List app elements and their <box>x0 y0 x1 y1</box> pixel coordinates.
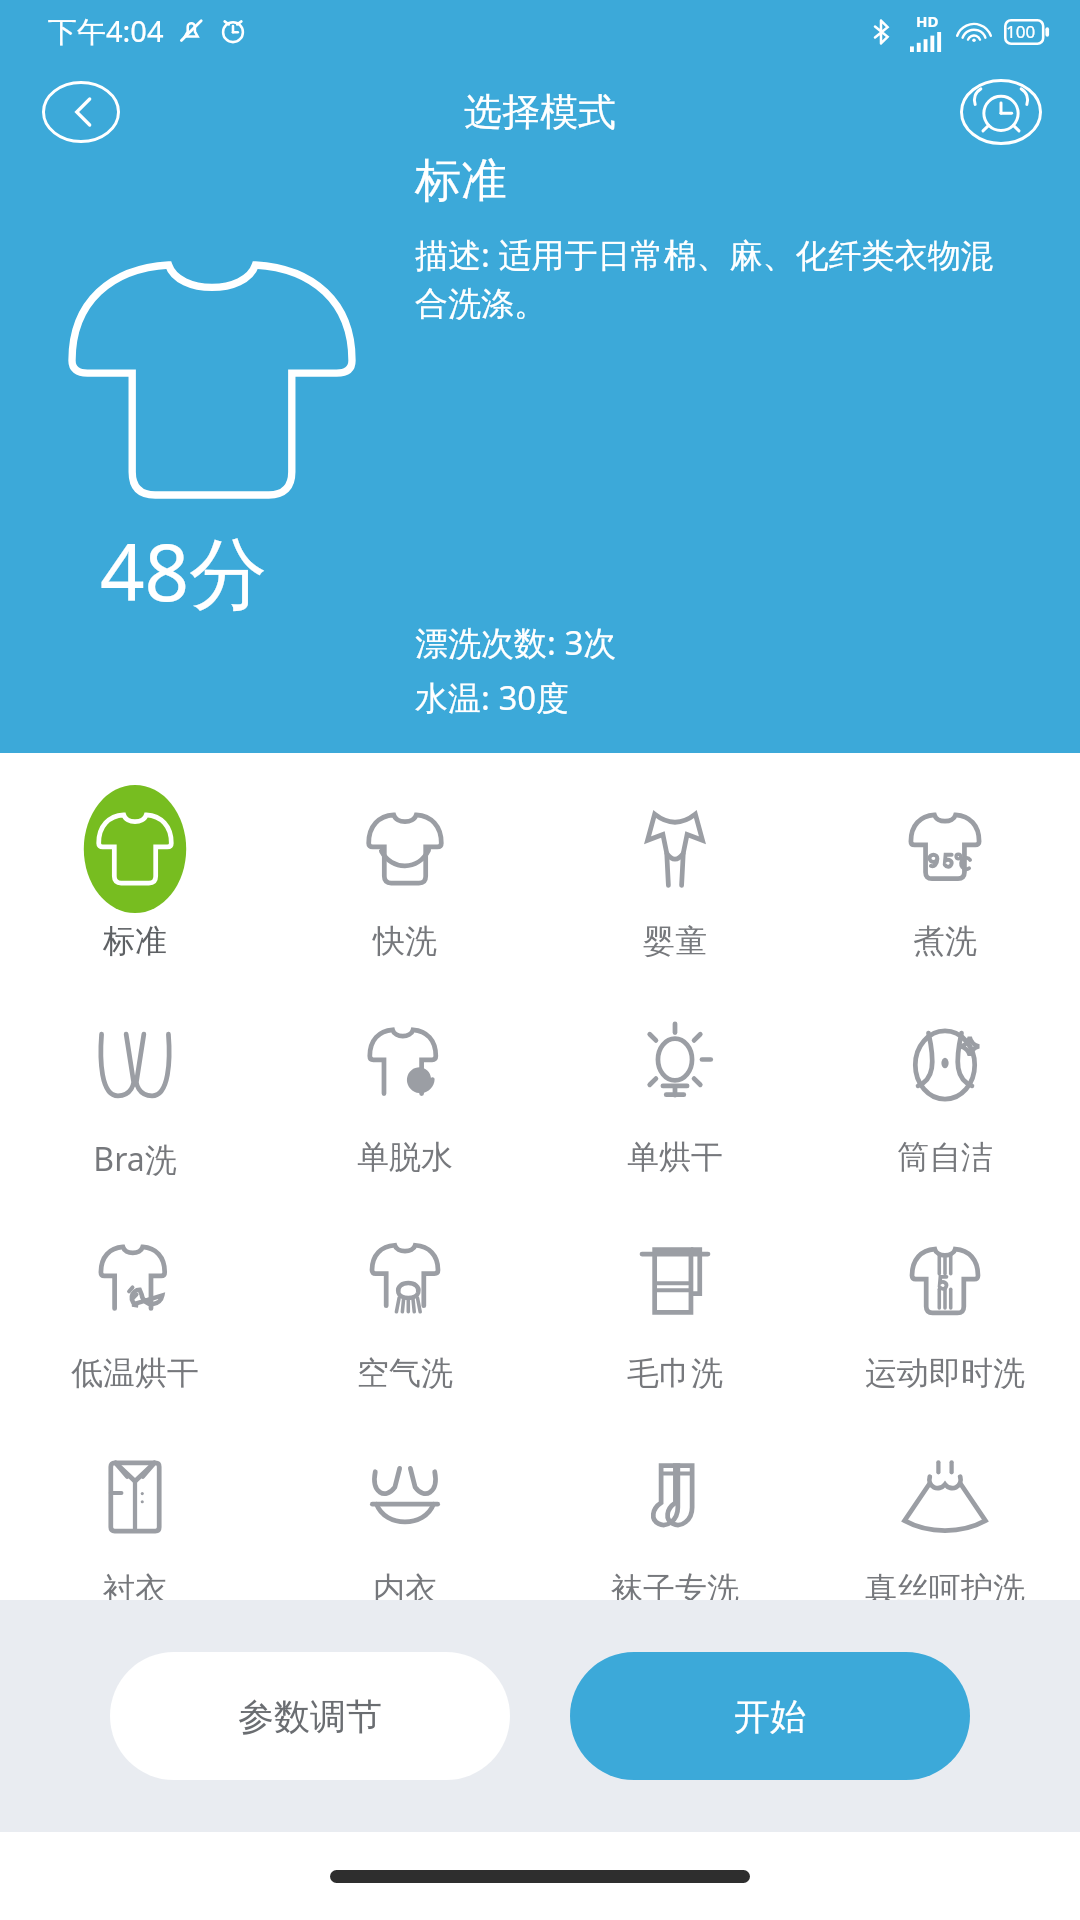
staticText: 描述: 适用于日常棉、麻、化纤类衣物混合洗涤。 <box>415 232 1015 325</box>
staticText: 开始 <box>734 1694 806 1739</box>
staticText: 煮洗 <box>913 921 977 961</box>
staticText: 真丝呵护洗 <box>865 1569 1025 1600</box>
button[interactable]: 袜子专洗 <box>540 1419 810 1600</box>
button[interactable]: 开始 <box>570 1652 970 1780</box>
button[interactable]: 空气洗 <box>270 1203 540 1419</box>
staticText: 内衣 <box>373 1569 437 1600</box>
staticText: 下午4:04 <box>48 11 164 51</box>
staticText: 毛巾洗 <box>627 1353 723 1393</box>
button[interactable]: 单烘干 <box>540 987 810 1203</box>
button[interactable]: 低温烘干 <box>0 1203 270 1419</box>
button[interactable]: 快洗 <box>270 771 540 987</box>
staticText: 衬衣 <box>103 1569 167 1600</box>
button[interactable]: 内衣 <box>270 1419 540 1600</box>
staticText: HD <box>916 11 939 31</box>
staticText: 漂洗次数: 3次 <box>415 620 617 665</box>
staticText: 100 <box>1006 20 1036 43</box>
staticText: 单脱水 <box>357 1137 453 1177</box>
button[interactable]: 婴童 <box>540 771 810 987</box>
staticText: 单烘干 <box>627 1137 723 1177</box>
button[interactable]: 标准 <box>0 771 270 987</box>
staticText: 48分 <box>100 518 268 625</box>
button[interactable]: Reservation timer <box>960 79 1042 145</box>
staticText: 袜子专洗 <box>611 1569 739 1600</box>
staticText: 标准 <box>103 921 167 961</box>
button[interactable]: 煮洗 <box>810 771 1080 987</box>
staticText: 标准 <box>415 152 507 210</box>
button[interactable]: 毛巾洗 <box>540 1203 810 1419</box>
staticText: 空气洗 <box>357 1353 453 1393</box>
staticText: 选择模式 <box>464 88 616 136</box>
staticText: 筒自洁 <box>897 1137 993 1177</box>
button[interactable]: Back <box>42 81 120 143</box>
button[interactable]: 参数调节 <box>110 1652 510 1780</box>
staticText: Bra洗 <box>93 1137 177 1181</box>
button[interactable]: 单脱水 <box>270 987 540 1203</box>
staticText: 参数调节 <box>238 1694 382 1739</box>
staticText: 低温烘干 <box>71 1353 199 1393</box>
button[interactable]: 筒自洁 <box>810 987 1080 1203</box>
button[interactable]: 衬衣 <box>0 1419 270 1600</box>
staticText: 运动即时洗 <box>865 1353 1025 1393</box>
button[interactable]: 运动即时洗 <box>810 1203 1080 1419</box>
button[interactable]: Bra洗 <box>0 987 270 1203</box>
button[interactable]: 真丝呵护洗 <box>810 1419 1080 1600</box>
staticText: 水温: 30度 <box>415 675 570 720</box>
staticText: 婴童 <box>643 921 707 961</box>
staticText: 快洗 <box>373 921 437 961</box>
